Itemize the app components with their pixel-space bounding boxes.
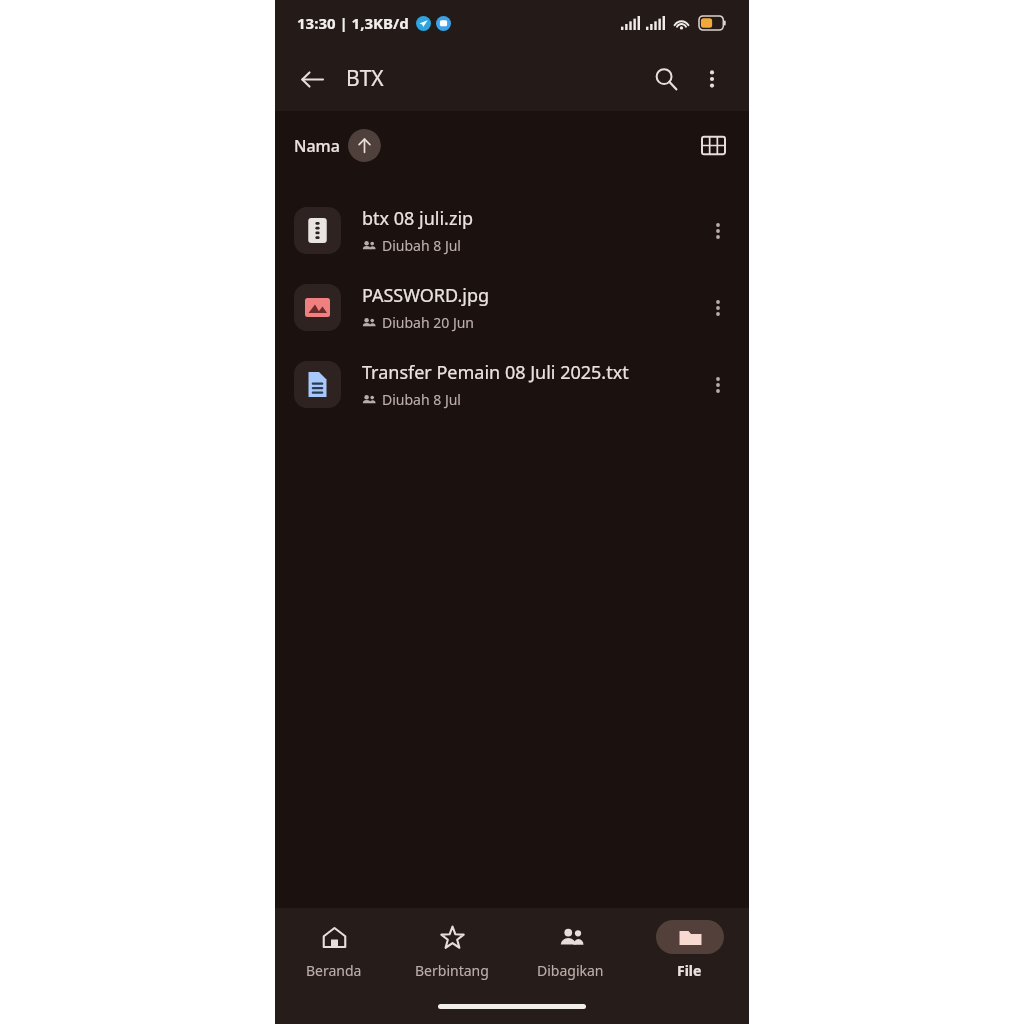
staticText: Diubah 8 Jul: [382, 236, 461, 255]
button[interactable]: More options: [689, 56, 735, 102]
button[interactable]: Transfer Pemain 08 Juli 2025.txt: [275, 346, 749, 423]
button[interactable]: Grid view: [691, 123, 735, 167]
button[interactable]: btx 08 juli.zip: [275, 192, 749, 269]
button[interactable]: More options for PASSWORD.jpg: [695, 285, 741, 331]
staticText: Diubah 8 Jul: [382, 390, 461, 409]
button[interactable]: More options for Transfer Pemain 08 Juli…: [695, 362, 741, 408]
button[interactable]: More options for btx 08 juli.zip: [695, 208, 741, 254]
staticText: Dibagikan: [537, 961, 604, 980]
staticText: Nama: [294, 135, 340, 157]
button[interactable]: Beranda: [275, 908, 393, 992]
button[interactable]: File: [630, 908, 749, 992]
staticText: btx 08 juli.zip: [362, 206, 474, 231]
button[interactable]: Berbintang: [393, 908, 511, 992]
staticText: Diubah 20 Jun: [382, 313, 475, 332]
staticText: Transfer Pemain 08 Juli 2025.txt: [362, 360, 629, 385]
staticText: Beranda: [306, 961, 362, 980]
button[interactable]: Search: [643, 56, 689, 102]
button[interactable]: PASSWORD.jpg: [275, 269, 749, 346]
staticText: Berbintang: [415, 961, 489, 980]
button[interactable]: Back: [289, 56, 335, 102]
staticText: PASSWORD.jpg: [362, 283, 490, 308]
button[interactable]: Dibagikan: [511, 908, 630, 992]
staticText: BTX: [346, 64, 384, 93]
staticText: 13:30 | 1,3KB/d: [297, 13, 409, 33]
button[interactable]: Nama: [294, 129, 381, 162]
staticText: File: [677, 961, 702, 980]
